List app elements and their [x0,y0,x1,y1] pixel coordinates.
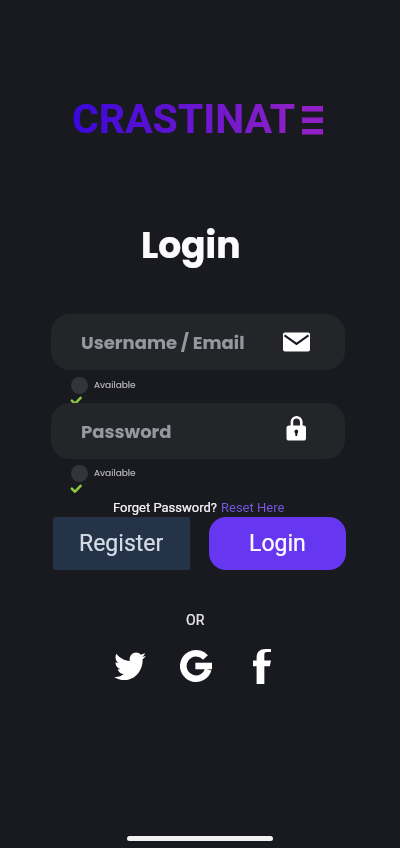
button[interactable]: Sign in with Google [180,650,212,682]
staticText: Login [249,530,306,557]
button[interactable]: Register [53,517,190,570]
staticText: Login [141,220,241,270]
button[interactable]: Reset Here [221,500,285,515]
button[interactable]: Sign in with Facebook [253,649,271,684]
staticText: Register [79,530,164,557]
staticText: Forget Password? [113,500,221,515]
staticText: Username / Email [81,330,245,355]
staticText: Reset Here [221,500,285,515]
button[interactable]: Login [209,517,346,570]
staticText: OR [186,612,205,628]
staticText: Available [94,379,136,392]
staticText: Available [94,467,136,480]
button[interactable]: Password [51,403,345,459]
button[interactable]: Sign in with Twitter [114,652,146,680]
staticText: Password [81,419,172,444]
button[interactable]: Email [51,314,345,370]
staticText: CRASTINAT [72,95,296,143]
